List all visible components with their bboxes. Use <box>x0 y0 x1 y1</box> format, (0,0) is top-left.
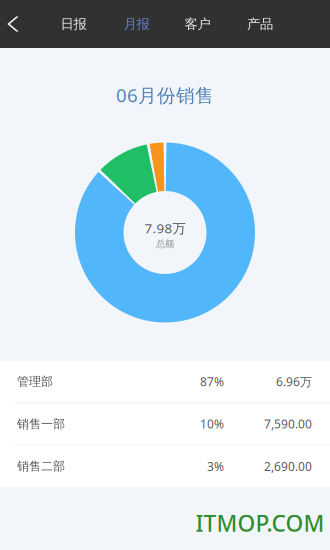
staticText: 6.96万 <box>276 374 312 389</box>
staticText: 7,590.00 <box>264 416 312 432</box>
staticText: 06月份销售 <box>116 83 214 107</box>
staticText: 87% <box>200 374 224 389</box>
staticText: 日报 <box>60 16 86 32</box>
staticText: 月报 <box>123 16 149 32</box>
staticText: 客户 <box>184 16 210 32</box>
staticText: 销售二部 <box>17 459 65 474</box>
staticText: 销售一部 <box>17 417 65 431</box>
staticText: 管理部 <box>17 374 53 389</box>
staticText: 2,690.00 <box>264 458 312 474</box>
staticText: 总额 <box>156 238 174 250</box>
staticText: 10% <box>200 416 224 432</box>
button[interactable]: Back <box>0 0 31 48</box>
button[interactable]: 产品 <box>233 0 287 48</box>
staticText: 3% <box>207 458 224 474</box>
staticText: 产品 <box>247 16 273 32</box>
staticText: 7.98万 <box>144 219 185 237</box>
staticText: ITMOP.COM <box>195 508 324 538</box>
button[interactable]: 销售二部 <box>0 446 330 487</box>
button[interactable]: 日报 <box>46 0 100 48</box>
button[interactable]: 月报 <box>109 0 163 48</box>
button[interactable]: 客户 <box>170 0 224 48</box>
button[interactable]: 管理部 <box>0 361 330 402</box>
button[interactable]: 销售一部 <box>0 403 330 445</box>
